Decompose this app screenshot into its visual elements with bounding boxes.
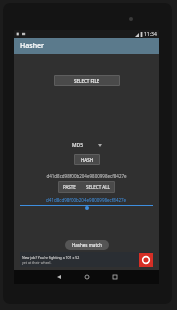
button[interactable]: Back: [45, 271, 73, 283]
button[interactable]: Recents: [101, 271, 129, 283]
staticText: 11:34: [144, 31, 157, 38]
button[interactable]: SELECT FILE: [54, 75, 120, 86]
button[interactable]: Home: [73, 271, 101, 283]
staticText: SELECT FILE: [74, 78, 100, 84]
button[interactable]: SELECT ALL: [81, 181, 115, 193]
button[interactable]: MD5: [68, 141, 106, 150]
staticText: Hasher: [20, 41, 45, 51]
staticText: New job? You're fighting a 101 x 52: [22, 255, 80, 260]
staticText: HASH: [81, 157, 94, 163]
button[interactable]: d41d8cd98f00b204e9800998ecf8427e: [20, 197, 153, 210]
button[interactable]: HASH: [74, 154, 100, 165]
button[interactable]: New job? You're fighting a 101 x 52: [20, 252, 153, 267]
staticText: yet at their wheel.: [22, 260, 52, 265]
staticText: Hashes match: [72, 242, 102, 248]
staticText: SELECT ALL: [86, 184, 110, 190]
staticText: d41d8cd98f00b204e9800998ecf8427e: [46, 197, 127, 203]
staticText: PASTE: [63, 184, 76, 190]
staticText: d41d8cd98f00b204e9800998ecf8427e: [46, 173, 127, 179]
staticText: MD5: [72, 142, 84, 149]
button[interactable]: Hasher: [14, 38, 159, 54]
button[interactable]: PASTE: [58, 181, 81, 193]
